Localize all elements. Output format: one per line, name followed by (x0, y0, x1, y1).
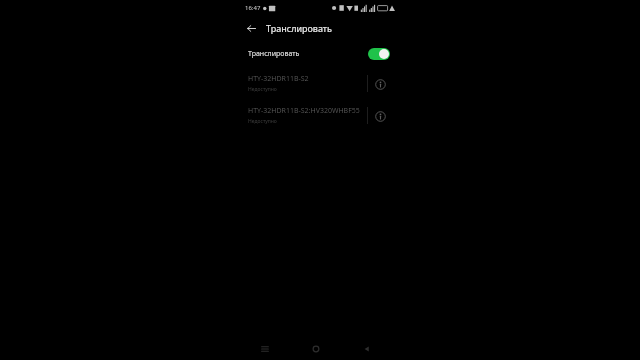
staticText: Транслировать (248, 49, 300, 59)
button[interactable]: Транслировать (240, 45, 392, 63)
button[interactable]: Последние приложения (240, 338, 290, 360)
button[interactable]: Назад (240, 17, 262, 39)
staticText: HTY-32HDR11B-S2:HV320WHBF55 (248, 106, 360, 116)
staticText: Недоступно (248, 118, 277, 125)
button[interactable]: Назад (341, 338, 392, 360)
button[interactable]: Сведения (368, 72, 392, 96)
staticText: Транслировать (266, 22, 332, 34)
button[interactable]: Сведения (368, 104, 392, 128)
staticText: 16:47 (245, 4, 261, 12)
button[interactable]: Главный экран (290, 338, 341, 360)
staticText: HTY-32HDR11B-S2 (248, 74, 309, 84)
button[interactable]: HTY-32HDR11B-S2:HV320WHBF55 (240, 103, 392, 128)
staticText: Недоступно (248, 86, 277, 93)
button[interactable]: HTY-32HDR11B-S2 (240, 71, 392, 96)
